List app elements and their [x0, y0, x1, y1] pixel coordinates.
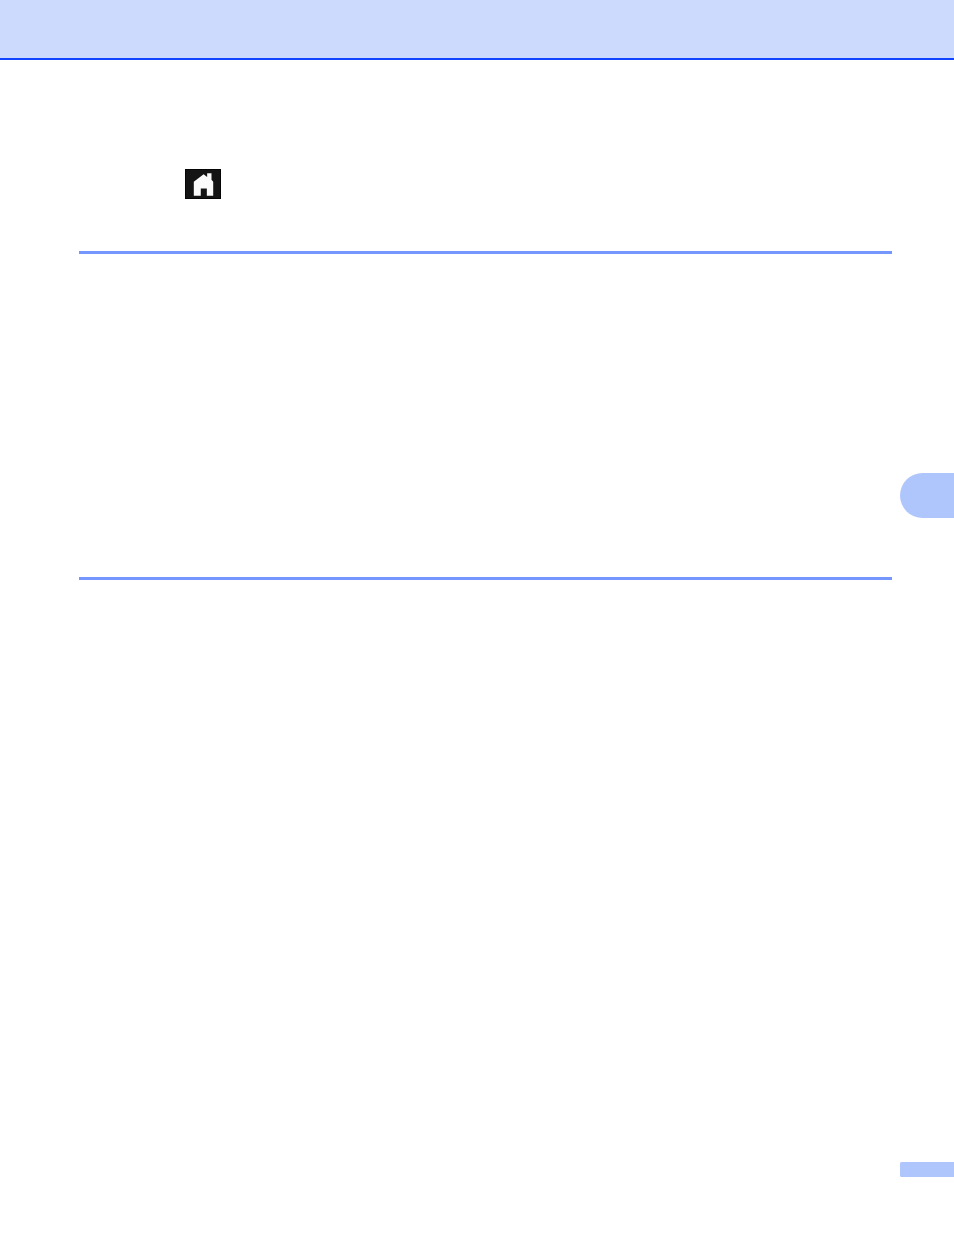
button[interactable]: Home — [185, 169, 221, 199]
button[interactable]: Section tab — [900, 473, 954, 518]
